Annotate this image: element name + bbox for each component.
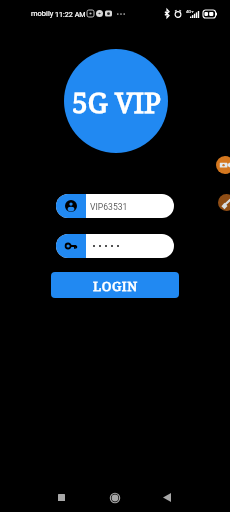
staticText: 5G VIP [72,83,162,121]
button[interactable]: Recent apps [47,483,76,512]
staticText: mobily [31,9,54,18]
button[interactable]: Home [100,483,129,512]
button[interactable]: Edit [218,194,230,211]
staticText: 11:22 AM [55,10,86,18]
button[interactable]: Record video [216,156,230,174]
button[interactable]: LOGIN [51,272,179,298]
button[interactable] [56,234,174,258]
staticText: LOGIN [93,277,138,295]
button[interactable]: Back [152,483,181,512]
button[interactable]: VIP63531 [56,194,174,218]
staticText: VIP63531 [90,202,128,212]
staticText: 4G+ [186,9,194,14]
